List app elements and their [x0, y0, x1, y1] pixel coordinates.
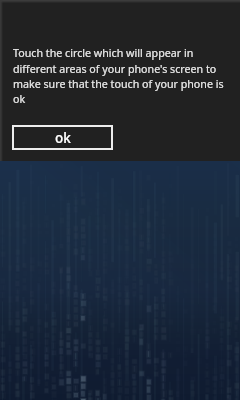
staticText: ok	[55, 129, 71, 147]
button[interactable]: ok	[12, 125, 113, 150]
staticText: Touch the circle which will appear in di…	[13, 46, 227, 106]
